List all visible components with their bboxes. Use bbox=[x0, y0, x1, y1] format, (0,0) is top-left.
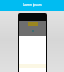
staticText: Lorem ipsum bbox=[23, 3, 42, 7]
